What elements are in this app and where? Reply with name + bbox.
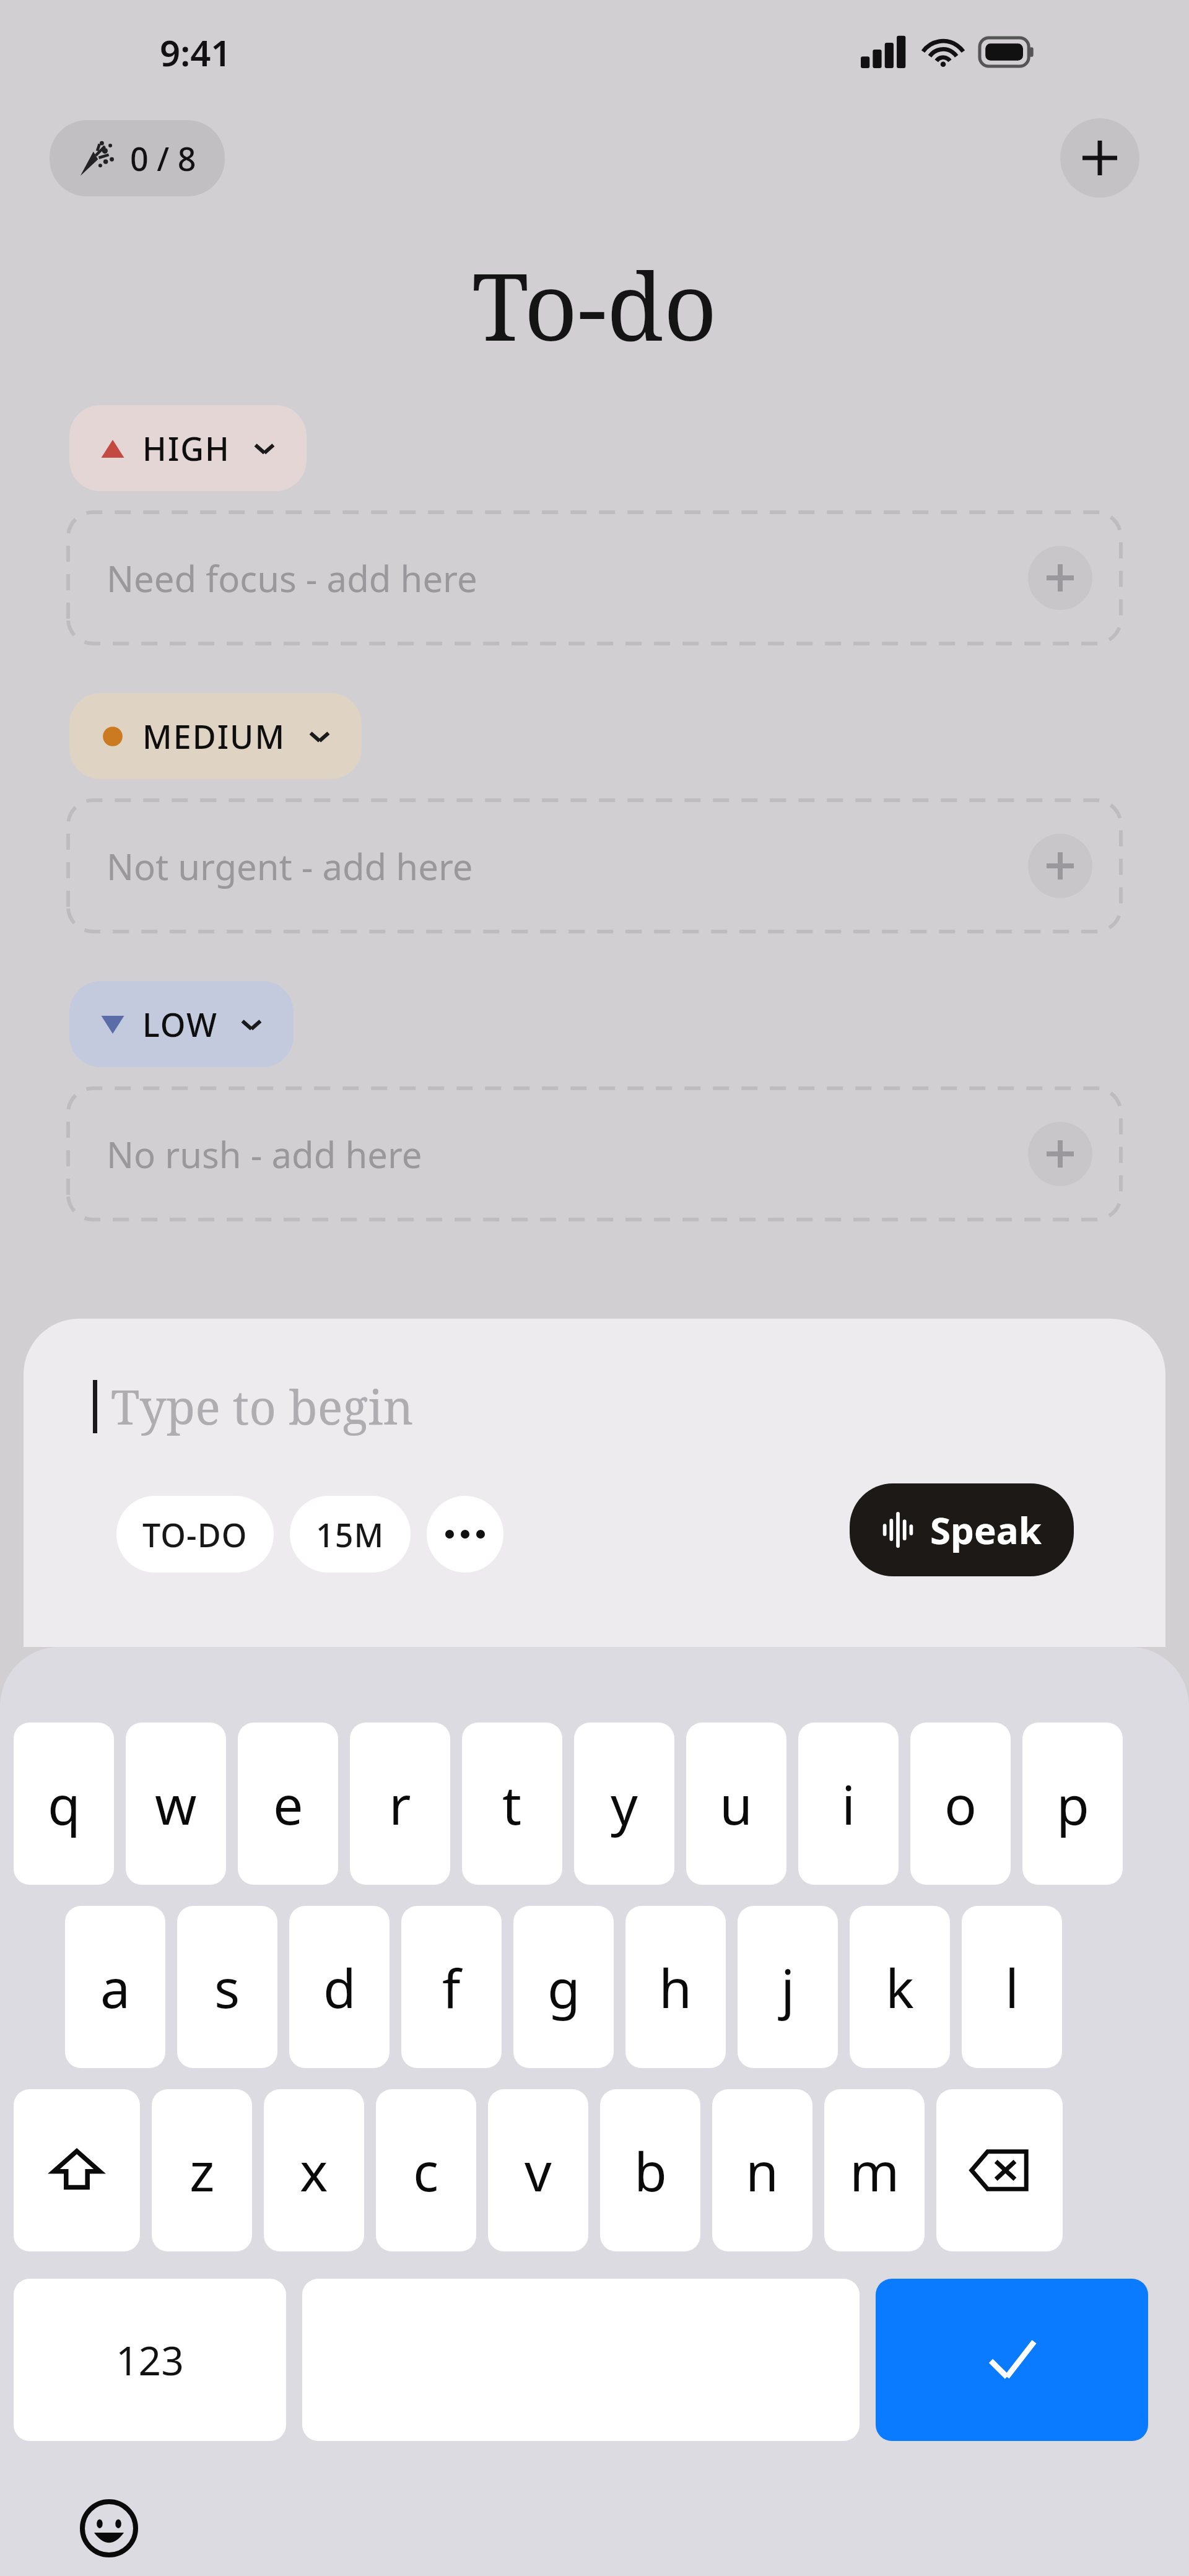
staticText: u <box>720 1768 753 1840</box>
button[interactable]: Shift <box>14 2089 140 2251</box>
button[interactable]: Add task <box>1060 118 1139 198</box>
staticText: MEDIUM <box>142 714 286 758</box>
button[interactable]: Backspace <box>936 2089 1063 2251</box>
button[interactable]: c <box>376 2089 476 2251</box>
button[interactable]: w <box>126 1722 226 1885</box>
button[interactable]: 0 / 8 <box>50 120 225 196</box>
button[interactable]: g <box>513 1906 614 2068</box>
staticText: i <box>842 1768 856 1840</box>
staticText: 9:41 <box>160 28 232 77</box>
button[interactable]: a <box>65 1906 165 2068</box>
button[interactable]: Add item <box>1028 546 1092 610</box>
button[interactable]: Done <box>876 2279 1148 2441</box>
button[interactable]: 15M <box>290 1496 411 1573</box>
staticText: l <box>1005 1951 1019 2024</box>
button[interactable]: Speak <box>850 1483 1074 1576</box>
button[interactable]: y <box>574 1722 674 1885</box>
button[interactable]: s <box>177 1906 277 2068</box>
staticText: To-do <box>0 242 1189 368</box>
button[interactable]: Type to begin <box>93 1374 414 1439</box>
button[interactable]: MEDIUM <box>69 693 362 779</box>
staticText: k <box>886 1951 914 2024</box>
button[interactable]: Not urgent - add here <box>68 800 1121 932</box>
staticText: a <box>100 1951 131 2024</box>
button[interactable]: b <box>600 2089 700 2251</box>
button[interactable]: TO-DO <box>116 1496 274 1573</box>
staticText: v <box>525 2134 552 2207</box>
staticText: h <box>659 1951 692 2024</box>
button[interactable]: Add item <box>1028 1122 1092 1186</box>
button[interactable]: d <box>289 1906 390 2068</box>
button[interactable]: Emoji <box>79 2494 1189 2562</box>
button[interactable]: LOW <box>69 981 294 1067</box>
staticText: TO-DO <box>142 1513 248 1557</box>
staticText: Speak <box>930 1504 1042 1555</box>
button[interactable]: 123 <box>14 2279 286 2441</box>
button[interactable]: No rush - add here <box>68 1088 1121 1220</box>
staticText: f <box>442 1951 461 2024</box>
button[interactable]: More options <box>427 1496 503 1573</box>
button[interactable]: x <box>264 2089 364 2251</box>
button[interactable]: p <box>1022 1722 1123 1885</box>
button[interactable]: Need focus - add here <box>68 512 1121 644</box>
button[interactable]: r <box>350 1722 450 1885</box>
staticText: g <box>547 1951 580 2024</box>
staticText: r <box>389 1768 411 1840</box>
button[interactable]: h <box>625 1906 726 2068</box>
button[interactable]: k <box>850 1906 950 2068</box>
staticText: c <box>413 2134 439 2207</box>
staticText: t <box>502 1768 522 1840</box>
staticText: LOW <box>142 1002 218 1046</box>
staticText: Type to begin <box>111 1374 414 1439</box>
button[interactable]: v <box>488 2089 588 2251</box>
staticText: 123 <box>116 2333 184 2387</box>
button[interactable]: z <box>152 2089 252 2251</box>
button[interactable]: u <box>686 1722 786 1885</box>
button[interactable]: e <box>238 1722 338 1885</box>
staticText: x <box>300 2134 328 2207</box>
button[interactable]: j <box>738 1906 838 2068</box>
staticText: HIGH <box>142 426 231 470</box>
staticText: 15M <box>316 1513 385 1557</box>
staticText: No rush - add here <box>107 1130 422 1179</box>
button[interactable]: f <box>401 1906 502 2068</box>
button[interactable]: i <box>798 1722 899 1885</box>
button[interactable]: Add item <box>1028 834 1092 898</box>
staticText: w <box>155 1768 197 1840</box>
button[interactable]: t <box>462 1722 562 1885</box>
staticText: j <box>781 1951 795 2024</box>
staticText: y <box>611 1768 638 1840</box>
staticText: z <box>189 2134 215 2207</box>
button[interactable]: m <box>824 2089 925 2251</box>
button[interactable]: q <box>14 1722 114 1885</box>
button[interactable]: HIGH <box>69 405 307 491</box>
staticText: b <box>634 2134 667 2207</box>
staticText: q <box>48 1768 81 1840</box>
staticText: p <box>1056 1768 1089 1840</box>
staticText: Not urgent - add here <box>107 842 473 891</box>
staticText: s <box>214 1951 240 2024</box>
staticText: o <box>944 1768 977 1840</box>
button[interactable]: n <box>712 2089 812 2251</box>
staticText: 0 / 8 <box>130 136 196 180</box>
staticText: m <box>850 2134 900 2207</box>
staticText: Need focus - add here <box>107 554 477 603</box>
button[interactable]: o <box>910 1722 1011 1885</box>
staticText: d <box>323 1951 356 2024</box>
button[interactable]: l <box>962 1906 1062 2068</box>
staticText: n <box>746 2134 779 2207</box>
staticText: e <box>273 1768 303 1840</box>
